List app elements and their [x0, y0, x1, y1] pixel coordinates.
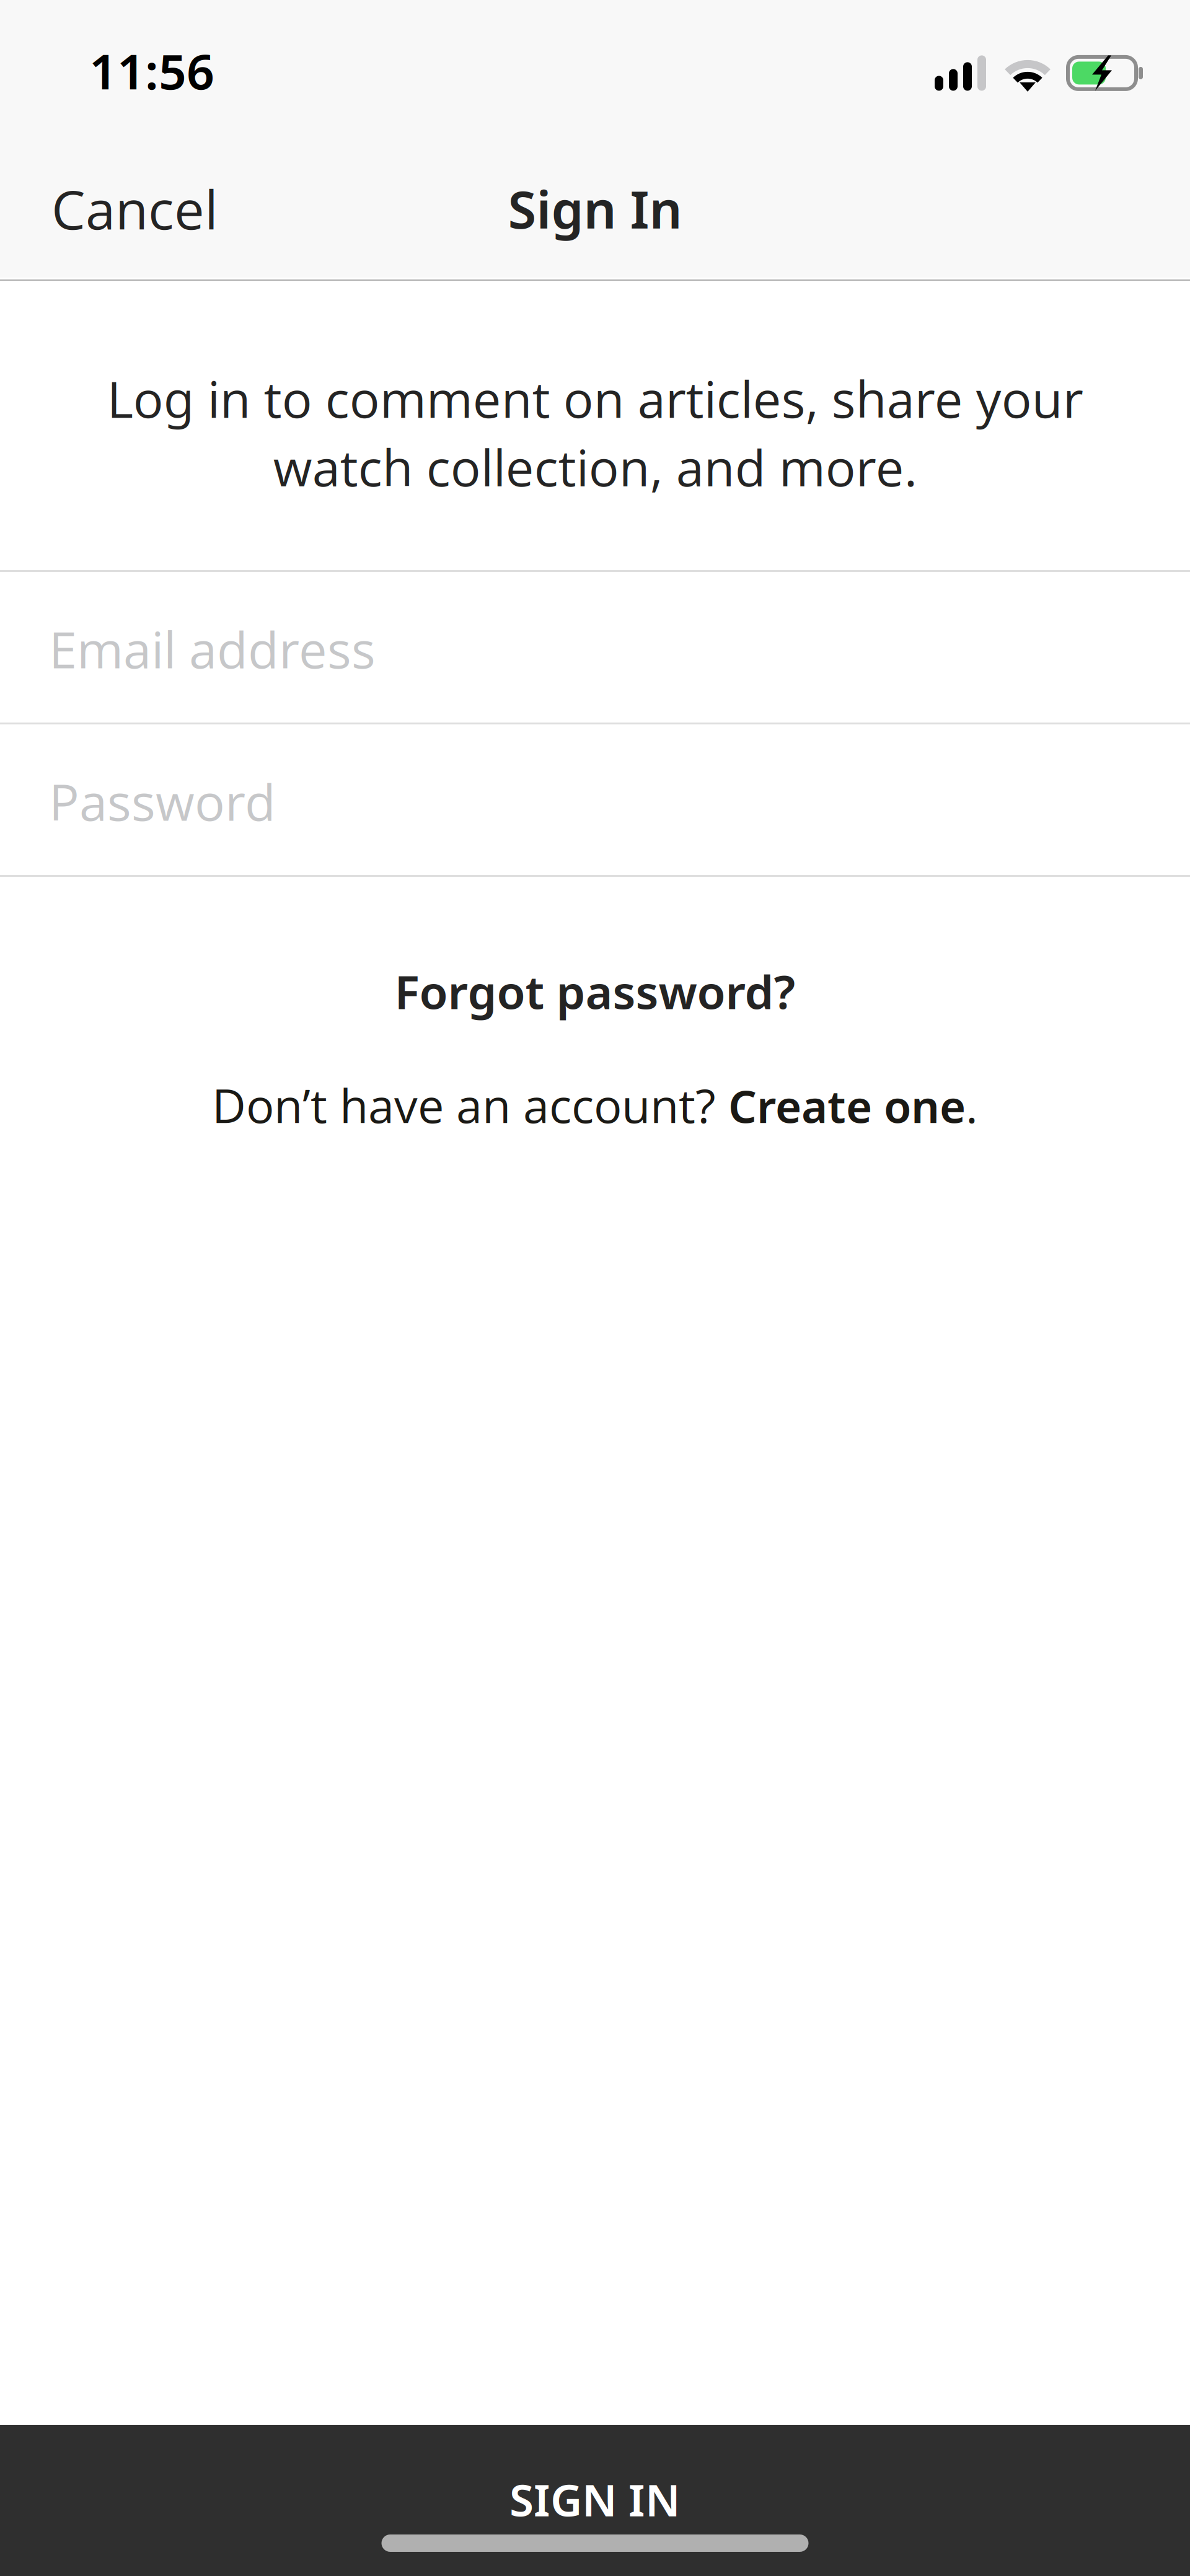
staticText: Forgot password? [394, 960, 796, 1023]
staticText: SIGN IN [509, 2469, 681, 2529]
button[interactable]: Forgot password? [0, 937, 1190, 1045]
staticText: Cancel [51, 172, 218, 245]
staticText: Don’t have an account? Create one. [212, 1074, 978, 1136]
button[interactable]: Cancel [0, 138, 267, 279]
button[interactable]: Don’t have an account? Create one. [0, 1049, 1190, 1161]
staticText: Password [49, 767, 276, 836]
button[interactable]: Password [0, 724, 1190, 877]
staticText: 11:56 [89, 37, 214, 104]
button[interactable]: SIGN IN [0, 2425, 1190, 2576]
staticText: Sign In [508, 173, 682, 244]
staticText: Email address [49, 615, 376, 683]
button[interactable]: Email address [0, 572, 1190, 724]
staticText: Log in to comment on articles, share you… [107, 364, 1083, 501]
